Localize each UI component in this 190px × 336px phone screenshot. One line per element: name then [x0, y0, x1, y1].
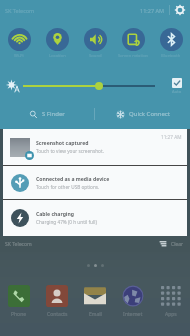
staticText: Screen rotation	[118, 53, 149, 59]
button[interactable]: Phone	[0, 284, 38, 308]
staticText: SK Telecom	[5, 7, 35, 14]
button[interactable]: Bluetooth	[152, 22, 190, 66]
button[interactable]: Apps	[152, 284, 190, 308]
button[interactable]: Cable charging	[3, 200, 187, 236]
staticText: Phone	[11, 311, 27, 318]
staticText: Clear	[171, 241, 184, 248]
button[interactable]: Internet	[114, 284, 152, 308]
staticText: Location	[49, 53, 66, 59]
button[interactable]: Quick Connect	[95, 103, 190, 125]
button[interactable]: Connected as a media device	[3, 166, 187, 199]
staticText: Touch for other USB options.	[36, 184, 100, 190]
staticText: Cable charging	[36, 211, 74, 218]
staticText: Bluetooth	[161, 53, 181, 59]
staticText: Auto	[172, 89, 182, 95]
button[interactable]: Screenshot captured	[3, 129, 187, 165]
button[interactable]: Auto brightness	[166, 78, 187, 95]
staticText: 11:27 AM	[161, 134, 182, 140]
button[interactable]: Location	[38, 22, 76, 66]
staticText: Connected as a media device	[36, 176, 110, 183]
staticText: Charging 47% (0 h until full)	[36, 219, 97, 225]
staticText: Email	[89, 311, 102, 318]
button[interactable]: Clear	[158, 239, 184, 249]
staticText: Contacts	[47, 311, 68, 318]
staticText: 11:27 AM	[140, 7, 164, 14]
staticText: Apps	[165, 311, 177, 318]
button[interactable]: Screen rotation	[114, 22, 152, 66]
button[interactable]: Wi-Fi	[0, 22, 38, 66]
staticText: Touch to view your screenshot.	[36, 148, 104, 154]
staticText: S Finder	[42, 110, 65, 118]
staticText: Screenshot captured	[36, 140, 89, 147]
staticText: Quick Connect	[129, 110, 170, 118]
button[interactable]: Email	[76, 284, 114, 308]
button[interactable]: Sound	[76, 22, 114, 66]
button[interactable]: Contacts	[38, 284, 76, 308]
staticText: Wi-Fi	[14, 53, 24, 59]
staticText: Sound	[89, 53, 102, 59]
button[interactable]: Settings	[174, 4, 186, 16]
staticText: Internet	[123, 311, 143, 318]
button[interactable]: S Finder	[0, 103, 94, 125]
staticText: SK Telecom	[5, 241, 32, 248]
